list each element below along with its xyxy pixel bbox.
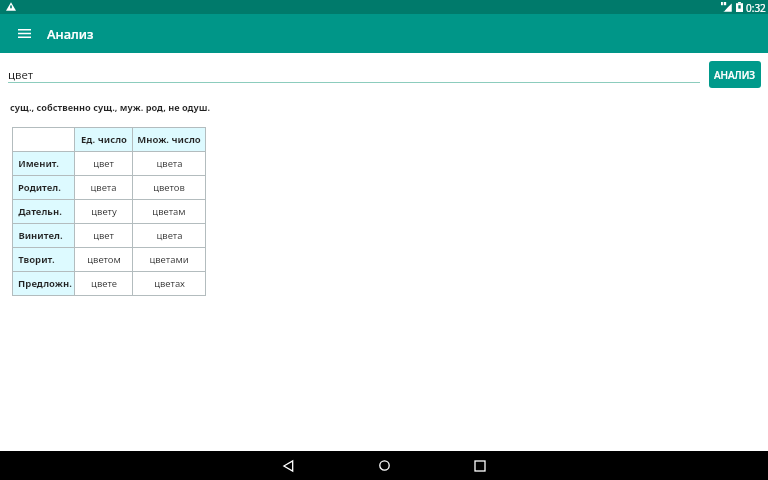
button[interactable]: Menu bbox=[6, 14, 43, 53]
staticText: цвета bbox=[156, 229, 183, 242]
staticText: Дательн. bbox=[18, 205, 62, 218]
button[interactable]: АНАЛИЗ bbox=[709, 61, 761, 88]
staticText: цвета bbox=[90, 181, 117, 194]
staticText: Родител. bbox=[18, 181, 61, 194]
staticText: 0:32 bbox=[746, 1, 766, 15]
staticText: Именит. bbox=[18, 157, 59, 170]
staticText: цветах bbox=[154, 277, 185, 290]
staticText: цветами bbox=[149, 253, 189, 266]
staticText: сущ., собственно сущ., муж. род, не одуш… bbox=[10, 101, 210, 114]
staticText: цвета bbox=[156, 157, 183, 170]
button[interactable]: Word input field bbox=[8, 58, 700, 83]
button[interactable]: Home bbox=[336, 451, 432, 480]
staticText: Множ. число bbox=[137, 133, 201, 146]
staticText: цвете bbox=[91, 277, 117, 290]
staticText: Ед. число bbox=[81, 133, 127, 146]
staticText: Предложн. bbox=[18, 277, 72, 290]
staticText: цвет bbox=[93, 229, 114, 242]
button[interactable]: Recents bbox=[432, 451, 528, 480]
staticText: цветом bbox=[87, 253, 121, 266]
staticText: цвету bbox=[91, 205, 117, 218]
staticText: цветам bbox=[152, 205, 186, 218]
staticText: цвет bbox=[8, 67, 34, 83]
staticText: Анализ bbox=[47, 25, 94, 43]
staticText: Творит. bbox=[18, 253, 55, 266]
staticText: Винител. bbox=[18, 229, 63, 242]
staticText: АНАЛИЗ bbox=[714, 68, 756, 82]
staticText: цветов bbox=[153, 181, 185, 194]
button[interactable]: Back bbox=[240, 451, 336, 480]
staticText: цвет bbox=[93, 157, 114, 170]
